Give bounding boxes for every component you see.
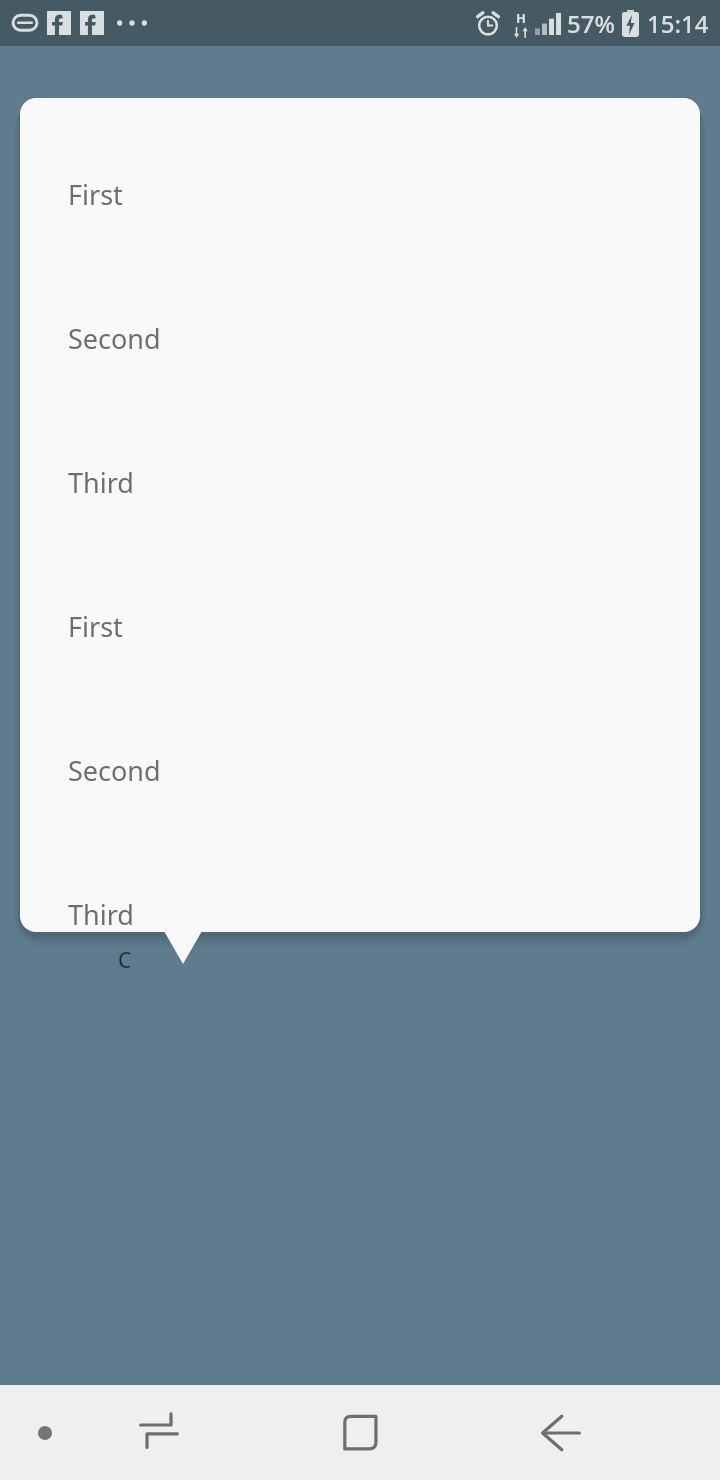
staticText: 57% — [567, 7, 615, 40]
staticText: 15:14 — [647, 7, 709, 40]
button[interactable]: Recent apps — [128, 1402, 190, 1464]
staticText: Third — [68, 464, 134, 501]
staticText: H — [516, 9, 526, 27]
staticText: Second — [68, 320, 161, 357]
staticText: C — [118, 946, 132, 975]
button[interactable]: First — [20, 158, 700, 230]
button[interactable]: Third — [20, 878, 700, 932]
button[interactable]: Back — [530, 1402, 592, 1464]
button[interactable]: Second — [20, 302, 700, 374]
staticText: Second — [68, 752, 161, 789]
staticText: First — [68, 608, 123, 645]
button[interactable]: Third — [20, 446, 700, 518]
button[interactable]: First — [20, 590, 700, 662]
button[interactable]: Home — [328, 1401, 392, 1465]
button[interactable]: Pin navigation bar — [16, 1404, 74, 1462]
button[interactable]: Second — [20, 734, 700, 806]
staticText: First — [68, 176, 123, 213]
staticText: Third — [68, 896, 134, 932]
